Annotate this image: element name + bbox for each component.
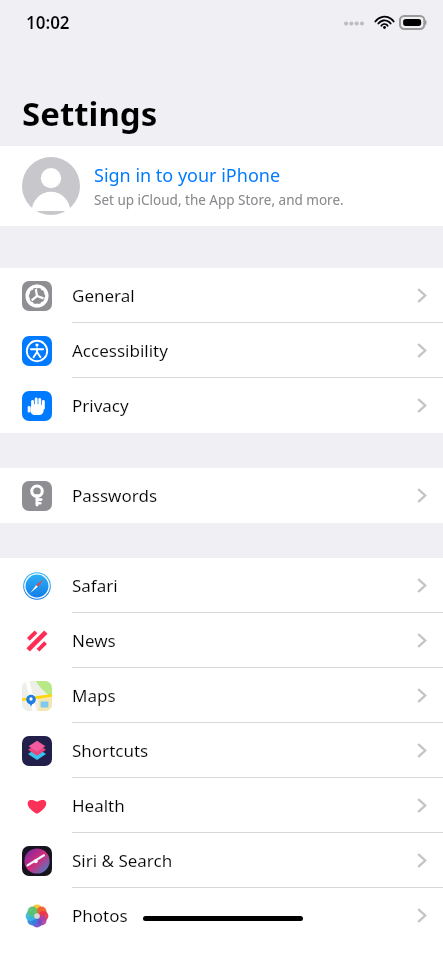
staticText: Accessibility	[72, 339, 168, 362]
button[interactable]: Maps	[0, 668, 443, 723]
button[interactable]: Safari	[0, 558, 443, 613]
staticText: Passwords	[72, 484, 158, 507]
staticText: Photos	[72, 904, 128, 927]
button[interactable]: Passwords	[0, 468, 443, 523]
staticText: Maps	[72, 684, 116, 707]
staticText: 10:02	[26, 11, 70, 34]
button[interactable]: Privacy	[0, 378, 443, 433]
staticText: Sign in to your iPhone	[94, 163, 281, 188]
staticText: News	[72, 629, 116, 652]
button[interactable]: Siri & Search	[0, 833, 443, 888]
staticText: Siri & Search	[72, 849, 173, 872]
button[interactable]: Health	[0, 778, 443, 833]
staticText: Shortcuts	[72, 739, 149, 762]
button[interactable]: Accessibility	[0, 323, 443, 378]
staticText: Privacy	[72, 394, 129, 417]
staticText: General	[72, 284, 135, 307]
staticText: Health	[72, 794, 125, 817]
button[interactable]: News	[0, 613, 443, 668]
button[interactable]: Photos	[0, 888, 443, 943]
button[interactable]: General	[0, 268, 443, 323]
staticText: Settings	[22, 91, 158, 136]
staticText: Set up iCloud, the App Store, and more.	[94, 191, 344, 209]
staticText: Safari	[72, 574, 118, 597]
button[interactable]: Shortcuts	[0, 723, 443, 778]
button[interactable]: Sign in to your iPhone	[0, 146, 443, 226]
